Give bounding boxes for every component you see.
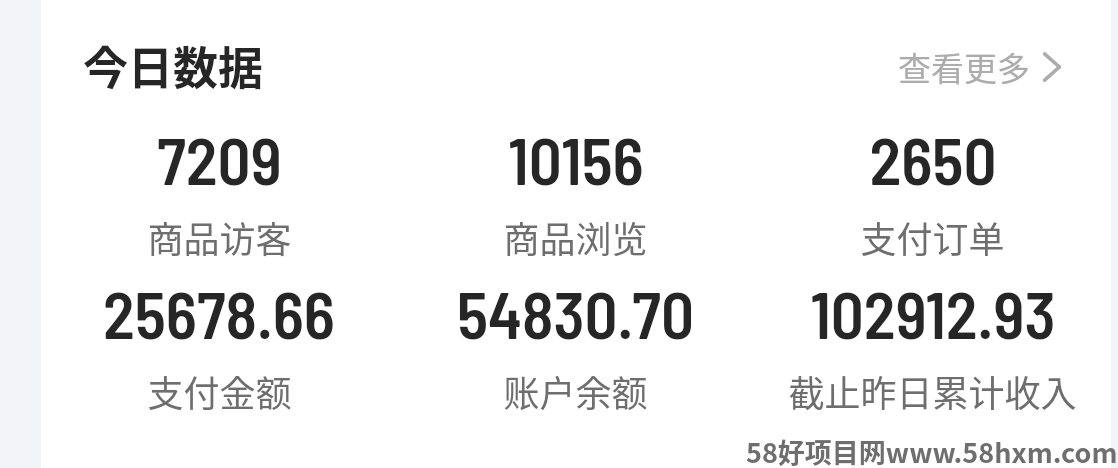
- staticText: 10156: [508, 120, 644, 198]
- staticText: 截止昨日累计收入: [788, 365, 1077, 417]
- button[interactable]: 2650: [754, 120, 1111, 263]
- other: View more: [1043, 52, 1061, 82]
- button[interactable]: 10156: [397, 120, 754, 263]
- staticText: 102912.93: [810, 274, 1056, 352]
- staticText: 支付金额: [147, 365, 292, 417]
- staticText: 账户余额: [503, 365, 648, 417]
- button[interactable]: 102912.93: [754, 274, 1111, 417]
- button[interactable]: 查看更多: [894, 37, 1065, 97]
- button[interactable]: 54830.70: [397, 274, 754, 417]
- button[interactable]: 25678.66: [41, 274, 397, 417]
- staticText: 54830.70: [457, 274, 694, 352]
- staticText: 查看更多: [898, 43, 1030, 91]
- button[interactable]: 7209: [41, 120, 397, 263]
- staticText: 7209: [157, 120, 282, 198]
- staticText: 今日数据: [83, 33, 264, 97]
- staticText: 商品浏览: [503, 211, 648, 263]
- staticText: 2650: [869, 120, 997, 198]
- staticText: 支付订单: [860, 211, 1005, 263]
- staticText: 25678.66: [103, 274, 335, 352]
- staticText: 商品访客: [147, 211, 292, 263]
- staticText: 58好项目网www.58hxm.com: [746, 432, 1118, 468]
